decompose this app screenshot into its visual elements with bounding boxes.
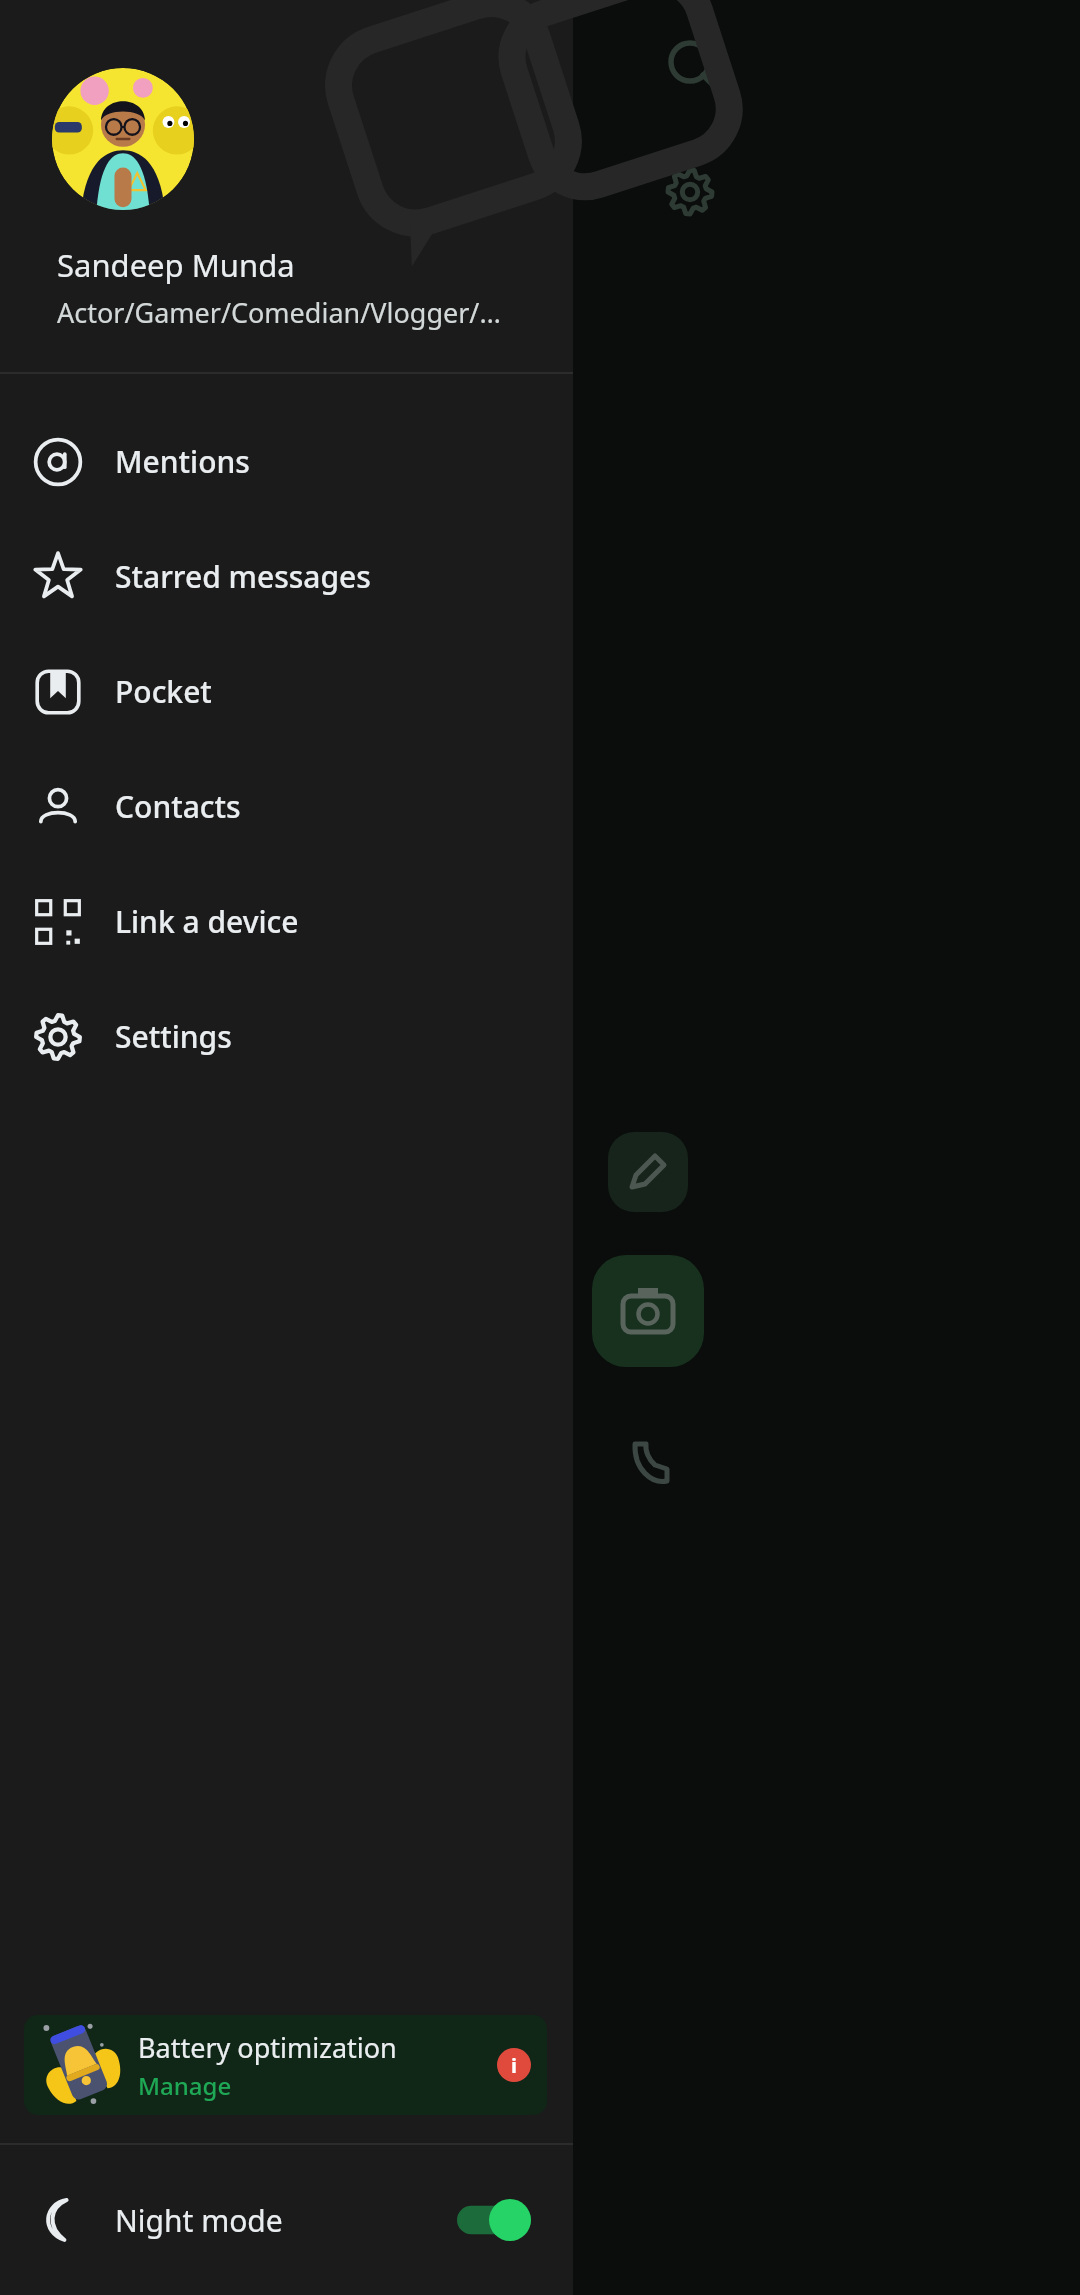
staticText: Battery optimization bbox=[138, 2029, 397, 2066]
button[interactable]: Link a device bbox=[0, 864, 573, 979]
staticText: Starred messages bbox=[115, 556, 371, 597]
button[interactable]: Night mode bbox=[0, 2145, 573, 2295]
button[interactable]: Contacts bbox=[0, 749, 573, 864]
staticText: Sandeep Munda bbox=[57, 244, 295, 286]
button[interactable]: Mentions bbox=[0, 404, 573, 519]
button[interactable]: Battery optimization bbox=[24, 2015, 547, 2115]
staticText: Contacts bbox=[115, 786, 241, 827]
staticText: Actor/Gamer/Comedian/Vlogger/… bbox=[57, 294, 501, 331]
button[interactable]: Starred messages bbox=[0, 519, 573, 634]
staticText: Link a device bbox=[115, 901, 299, 942]
staticText: Manage bbox=[138, 2069, 232, 2102]
staticText: Night mode bbox=[115, 2200, 283, 2241]
staticText: Pocket bbox=[115, 671, 212, 712]
staticText: Settings bbox=[115, 1016, 232, 1057]
button[interactable]: Night mode toggle bbox=[457, 2199, 531, 2241]
button[interactable]: Profile photo bbox=[52, 68, 194, 210]
button[interactable]: Pocket bbox=[0, 634, 573, 749]
staticText: Mentions bbox=[115, 441, 250, 482]
button[interactable]: Settings bbox=[0, 979, 573, 1094]
staticText: i bbox=[511, 2052, 517, 2079]
